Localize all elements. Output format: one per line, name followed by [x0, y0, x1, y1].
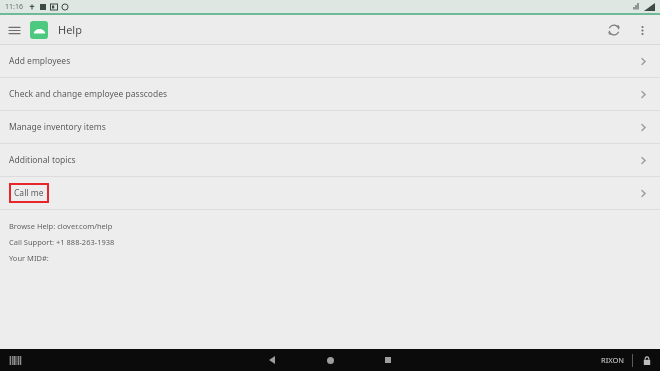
staticText: Call Support: +1 888-263-1938 [9, 237, 115, 247]
button[interactable]: More options [628, 16, 656, 44]
staticText: Add employees [9, 55, 71, 67]
button[interactable]: Call me [0, 177, 660, 209]
button[interactable]: Refresh [600, 16, 628, 44]
button[interactable]: Manage inventory items [0, 111, 660, 143]
staticText: Browse Help: clover.com/help [9, 221, 113, 231]
staticText: Help [58, 22, 82, 37]
staticText: Additional topics [9, 154, 76, 166]
button[interactable]: Additional topics [0, 144, 660, 176]
button[interactable]: Home [310, 349, 350, 371]
button[interactable]: Lock screen [640, 353, 654, 367]
button[interactable]: Scanner [6, 353, 24, 367]
staticText: Manage inventory items [9, 121, 106, 133]
button[interactable]: Recent apps [368, 349, 408, 371]
staticText: Your MID#: [9, 253, 49, 263]
staticText: Call me [14, 187, 44, 199]
button[interactable]: RIXON [601, 355, 625, 365]
button[interactable]: Back [252, 349, 292, 371]
button[interactable]: Open navigation menu [0, 16, 28, 44]
staticText: Check and change employee passcodes [9, 88, 168, 100]
button[interactable]: Add employees [0, 45, 660, 77]
button[interactable]: Check and change employee passcodes [0, 78, 660, 110]
staticText: 11:16 [5, 2, 23, 12]
